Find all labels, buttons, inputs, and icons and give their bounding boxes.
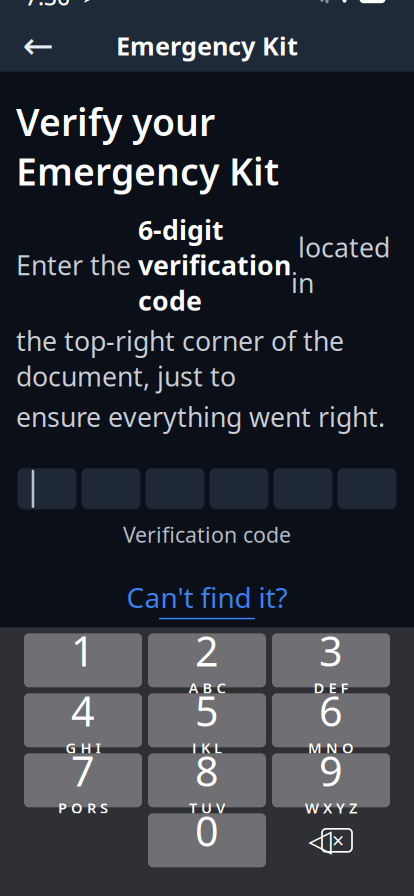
staticText: T U V (189, 798, 225, 817)
staticText: M N O (308, 738, 354, 757)
staticText: 4 (71, 683, 95, 738)
staticText: Verification code (123, 520, 291, 549)
staticText: located in (291, 229, 390, 300)
staticText: ➤ (70, 0, 97, 6)
button[interactable]: Back (11, 23, 65, 69)
staticText: J K L (192, 738, 222, 757)
staticText: 2 (195, 623, 219, 678)
staticText: 9 (319, 743, 343, 798)
staticText: 7 (71, 743, 95, 798)
staticText: P Q R S (58, 798, 108, 817)
staticText: Verify your Emergency Kit (16, 97, 279, 196)
button[interactable]: 9 (272, 753, 390, 807)
staticText: 6 (319, 683, 343, 738)
staticText: 0 (195, 803, 219, 858)
button[interactable]: 4 (24, 693, 142, 747)
staticText: 3 (319, 623, 343, 678)
staticText: 7:36 (25, 0, 70, 12)
button[interactable]: 6 (272, 693, 390, 747)
button[interactable]: Can't find it? (110, 571, 303, 627)
button[interactable]: 7 (24, 753, 142, 807)
staticText: 1 (71, 623, 95, 678)
staticText: D E F (313, 678, 348, 697)
staticText: 5 (195, 683, 219, 738)
button[interactable]: 3 (272, 633, 390, 687)
staticText: × (332, 826, 344, 854)
staticText: ensure everything went right. (16, 399, 385, 434)
button[interactable]: 2 (148, 633, 266, 687)
staticText: A B C (188, 678, 225, 697)
staticText: G H I (65, 738, 100, 757)
staticText: ◁ (308, 823, 332, 858)
staticText: W X Y Z (305, 798, 357, 817)
staticText: Emergency Kit (116, 29, 298, 62)
staticText: Enter the (16, 247, 138, 283)
staticText: 6-digit verification code (138, 212, 291, 318)
staticText: Can't find it? (126, 579, 287, 616)
staticText: the top-right corner of the document, ju… (16, 323, 344, 394)
button[interactable]: Delete (272, 813, 390, 867)
staticText: 8 (195, 743, 219, 798)
button[interactable]: 8 (148, 753, 266, 807)
button[interactable]: 1 (24, 633, 142, 687)
staticText: ← (22, 24, 53, 67)
button[interactable]: 0 (148, 813, 266, 867)
button[interactable]: 5 (148, 693, 266, 747)
